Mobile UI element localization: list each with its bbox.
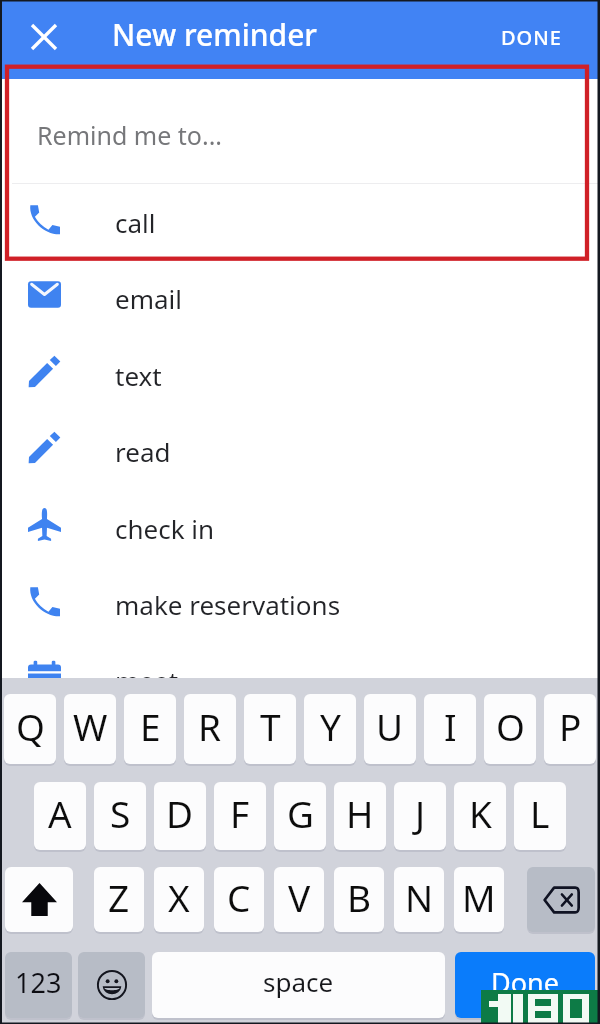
- button[interactable]: H: [334, 782, 386, 850]
- staticText: G: [287, 788, 314, 838]
- button[interactable]: Z: [94, 867, 144, 932]
- staticText: DONE: [501, 24, 562, 51]
- button[interactable]: call: [0, 182, 600, 258]
- button[interactable]: E: [124, 694, 176, 764]
- button[interactable]: T: [244, 694, 296, 764]
- staticText: S: [110, 788, 131, 838]
- button[interactable]: I: [424, 694, 476, 764]
- staticText: N: [405, 872, 434, 922]
- button[interactable]: M: [454, 867, 504, 932]
- button[interactable]: space: [152, 952, 445, 1018]
- staticText: Z: [108, 872, 130, 922]
- button[interactable]: meet: [0, 640, 600, 716]
- staticText: check in: [115, 511, 215, 546]
- staticText: read: [115, 434, 171, 469]
- button[interactable]: K: [454, 782, 506, 850]
- staticText: R: [198, 701, 222, 751]
- button[interactable]: X: [154, 867, 204, 932]
- staticText: meet: [115, 663, 179, 698]
- staticText: Done: [491, 964, 559, 1001]
- staticText: Q: [16, 701, 45, 751]
- button[interactable]: DONE: [495, 20, 568, 55]
- button[interactable]: check in: [0, 488, 600, 564]
- button[interactable]: Y: [304, 694, 356, 764]
- button[interactable]: R: [184, 694, 236, 764]
- button[interactable]: W: [64, 694, 116, 764]
- button[interactable]: Q: [4, 694, 56, 764]
- staticText: Remind me to...: [37, 118, 223, 152]
- staticText: text: [115, 358, 162, 393]
- button[interactable]: make reservations: [0, 564, 600, 640]
- staticText: E: [140, 701, 161, 751]
- staticText: I: [444, 701, 457, 751]
- staticText: P: [559, 701, 582, 751]
- button[interactable]: Done: [455, 952, 595, 1018]
- button[interactable]: U: [364, 694, 416, 764]
- staticText: O: [496, 701, 525, 751]
- button[interactable]: L: [514, 782, 566, 850]
- button[interactable]: F: [214, 782, 266, 850]
- staticText: 123: [15, 964, 62, 1001]
- button[interactable]: J: [394, 782, 446, 850]
- staticText: K: [469, 788, 492, 838]
- button[interactable]: read: [0, 411, 600, 487]
- button[interactable]: Emoji: [78, 952, 145, 1018]
- staticText: New reminder: [112, 14, 318, 55]
- button[interactable]: 123: [5, 952, 72, 1018]
- button[interactable]: P: [544, 694, 596, 764]
- staticText: X: [168, 872, 190, 922]
- staticText: U: [376, 701, 404, 751]
- button[interactable]: Close: [21, 14, 67, 60]
- staticText: F: [230, 788, 250, 838]
- staticText: H: [346, 788, 374, 838]
- staticText: space: [263, 964, 334, 999]
- staticText: call: [115, 205, 156, 240]
- staticText: W: [73, 701, 108, 751]
- button[interactable]: G: [274, 782, 326, 850]
- staticText: V: [288, 872, 311, 922]
- button[interactable]: S: [94, 782, 146, 850]
- staticText: Y: [320, 701, 341, 751]
- button[interactable]: D: [154, 782, 206, 850]
- staticText: T: [260, 701, 281, 751]
- staticText: B: [347, 872, 372, 922]
- button[interactable]: B: [334, 867, 384, 932]
- button[interactable]: email: [0, 258, 600, 334]
- button[interactable]: Shift: [5, 867, 73, 932]
- staticText: C: [227, 872, 251, 922]
- staticText: D: [166, 788, 194, 838]
- button[interactable]: O: [484, 694, 536, 764]
- staticText: J: [415, 788, 426, 838]
- button[interactable]: A: [34, 782, 86, 850]
- button[interactable]: Backspace: [527, 867, 595, 932]
- button[interactable]: N: [394, 867, 444, 932]
- button[interactable]: text: [0, 335, 600, 411]
- staticText: A: [48, 788, 72, 838]
- staticText: M: [462, 872, 496, 922]
- button[interactable]: V: [274, 867, 324, 932]
- staticText: L: [530, 788, 550, 838]
- staticText: make reservations: [115, 587, 341, 622]
- button[interactable]: C: [214, 867, 264, 932]
- staticText: email: [115, 281, 182, 316]
